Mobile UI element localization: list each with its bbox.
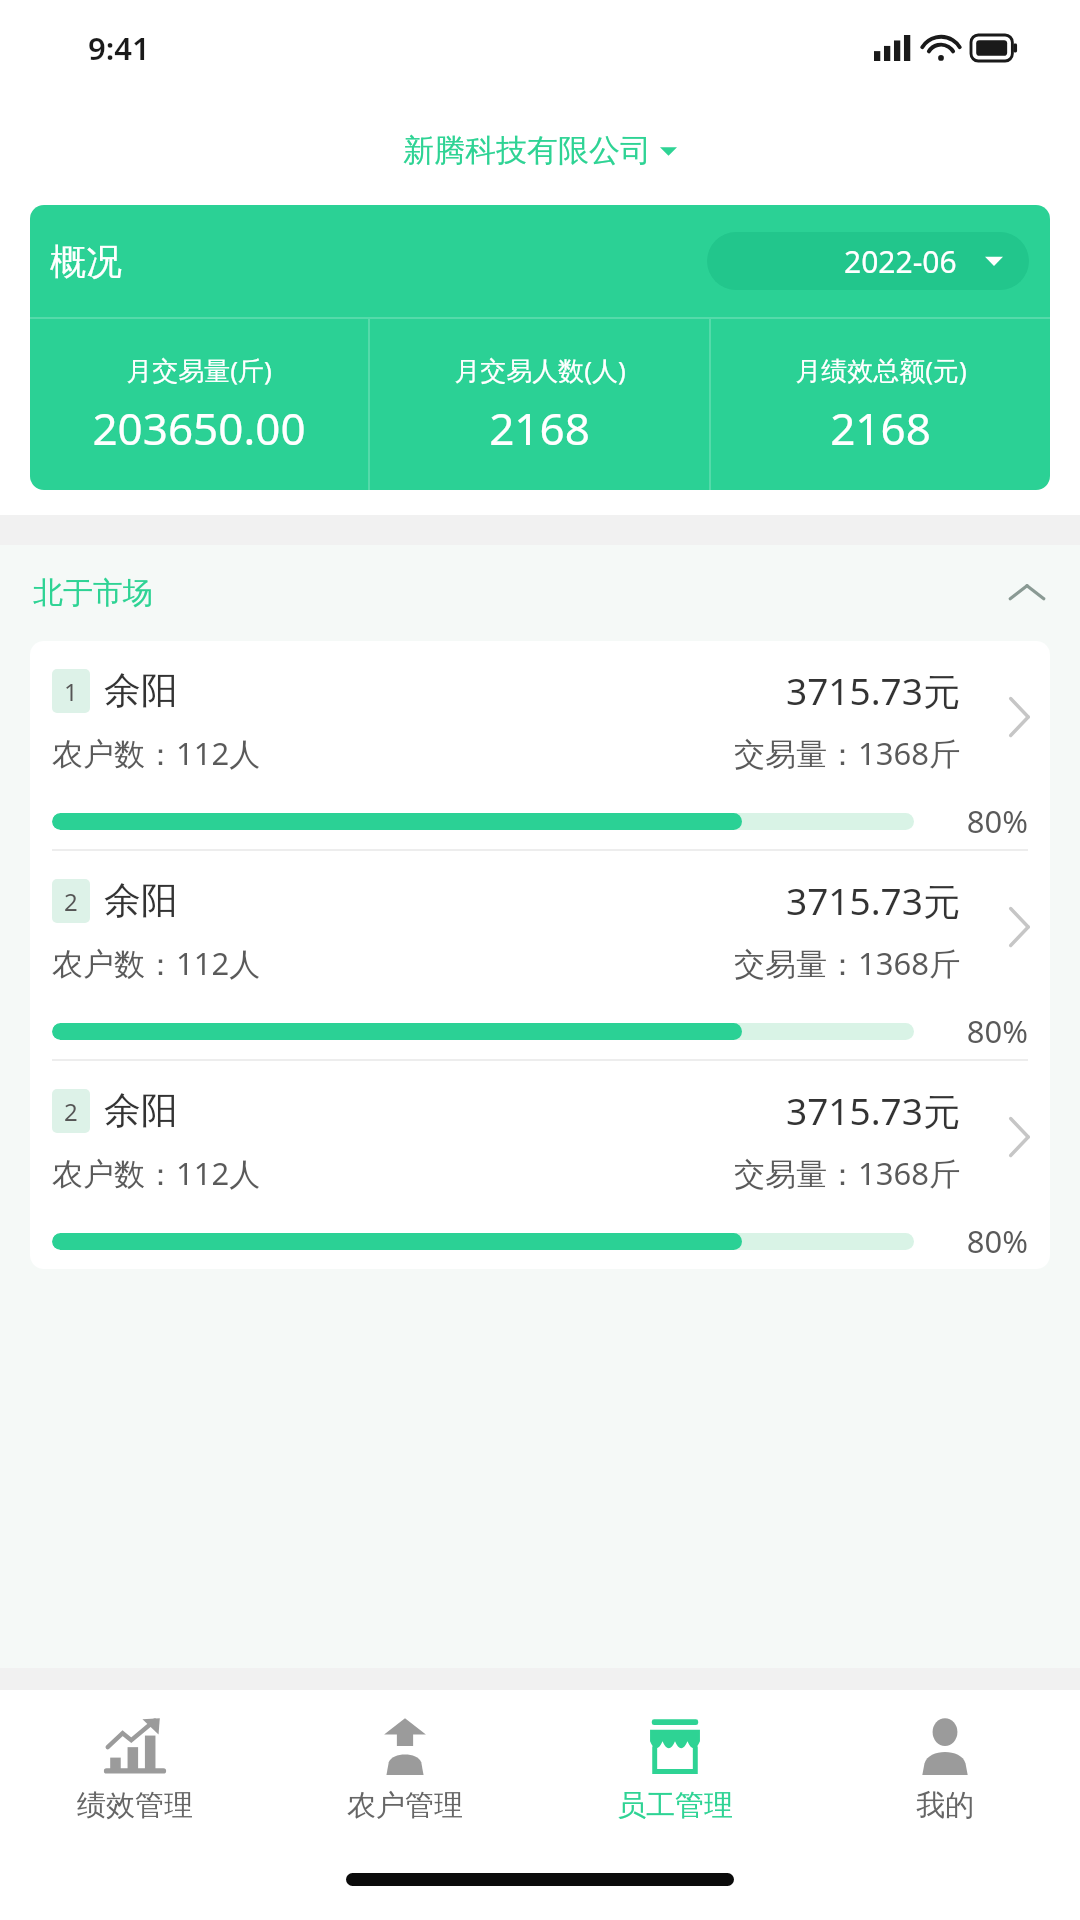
button[interactable]: 新腾科技有限公司 (0, 95, 1080, 205)
staticText: 农户数：112人 (52, 942, 261, 984)
button[interactable]: 我的 (810, 1690, 1080, 1850)
other: 查看详情 (1008, 1116, 1030, 1158)
button[interactable]: 2 (30, 1061, 1050, 1269)
staticText: 203650.00 (92, 398, 306, 458)
staticText: 1 (64, 675, 78, 708)
staticText: 月绩效总额(元) (795, 352, 967, 388)
button[interactable]: 绩效管理 (0, 1690, 270, 1850)
staticText: 2168 (489, 398, 590, 458)
button[interactable]: 农户管理 (270, 1690, 540, 1850)
other: 查看详情 (1008, 906, 1030, 948)
staticText: 交易量：1368斤 (734, 1152, 960, 1194)
staticText: 3715.73元 (786, 1085, 960, 1136)
staticText: 我的 (916, 1787, 974, 1824)
button[interactable]: 员工管理 (540, 1690, 810, 1850)
staticText: 北于市场 (33, 574, 153, 612)
staticText: 员工管理 (617, 1787, 733, 1824)
staticText: 2 (64, 885, 78, 918)
staticText: 3715.73元 (786, 665, 960, 716)
button[interactable]: 1 (30, 641, 1050, 851)
staticText: 余阳 (104, 1087, 178, 1134)
button[interactable]: 月交易人数(人) (370, 319, 709, 490)
staticText: 80% (936, 800, 1028, 842)
staticText: 余阳 (104, 667, 178, 714)
staticText: 9:41 (88, 27, 150, 69)
staticText: 月交易人数(人) (454, 352, 626, 388)
staticText: 交易量：1368斤 (734, 942, 960, 984)
staticText: 余阳 (104, 877, 178, 924)
staticText: 月交易量(斤) (126, 352, 272, 388)
button[interactable]: 北于市场 (0, 545, 1080, 641)
staticText: 2 (64, 1095, 78, 1128)
staticText: 绩效管理 (77, 1787, 193, 1824)
button[interactable]: 2 (30, 851, 1050, 1061)
staticText: 2022-06 (844, 241, 957, 282)
staticText: 新腾科技有限公司 (403, 131, 651, 170)
staticText: 3715.73元 (786, 875, 960, 926)
button[interactable]: 2022-06 (707, 232, 1029, 290)
staticText: 80% (936, 1220, 1028, 1262)
button[interactable]: 月绩效总额(元) (711, 319, 1050, 490)
button[interactable]: 月交易量(斤) (30, 319, 368, 490)
staticText: 农户数：112人 (52, 732, 261, 774)
staticText: 农户数：112人 (52, 1152, 261, 1194)
staticText: 概况 (50, 239, 122, 284)
staticText: 交易量：1368斤 (734, 732, 960, 774)
other: 查看详情 (1008, 696, 1030, 738)
staticText: 农户管理 (347, 1787, 463, 1824)
staticText: 80% (936, 1010, 1028, 1052)
staticText: 2168 (830, 398, 931, 458)
